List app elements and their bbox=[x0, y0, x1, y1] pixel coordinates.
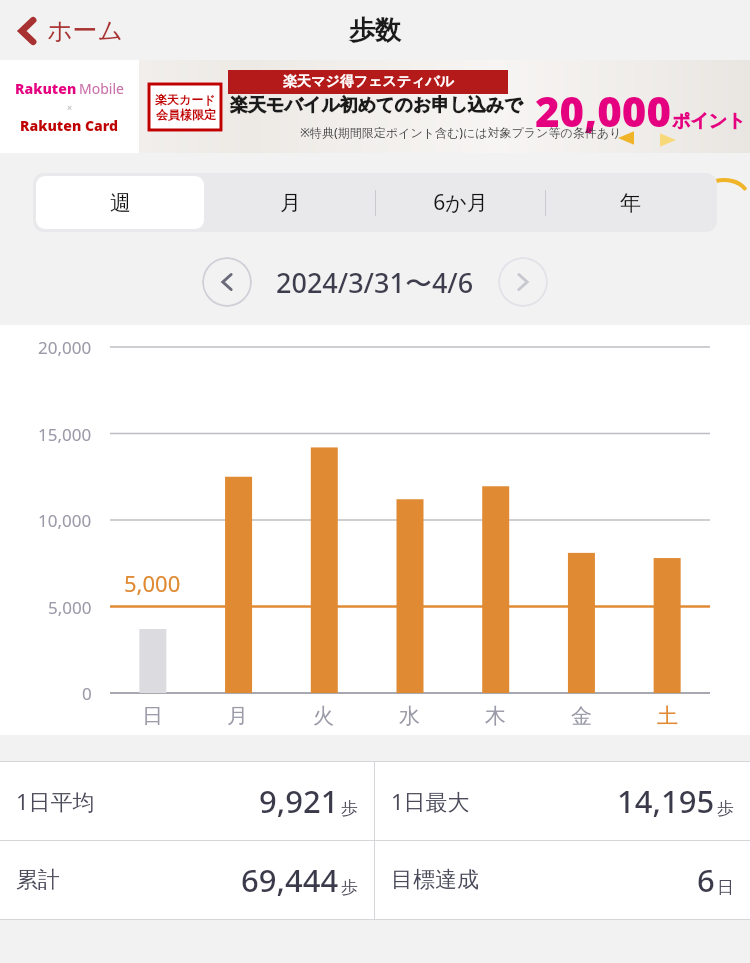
staticText: 日 bbox=[142, 703, 163, 729]
staticText: 歩 bbox=[717, 798, 734, 819]
staticText: 20,000 bbox=[38, 336, 92, 359]
staticText: 累計 bbox=[16, 866, 60, 894]
staticText: 歩 bbox=[341, 877, 358, 898]
button[interactable]: 前の週 bbox=[202, 257, 252, 307]
staticText: 6か月 bbox=[433, 188, 488, 217]
staticText: 月 bbox=[227, 703, 248, 729]
staticText: 年 bbox=[620, 190, 641, 216]
button[interactable]: 目標達成 bbox=[375, 841, 750, 919]
staticText: Rakuten bbox=[20, 116, 82, 135]
staticText: 14,195 bbox=[617, 780, 715, 822]
staticText: 6 bbox=[697, 859, 715, 901]
staticText: ホーム bbox=[47, 15, 124, 46]
staticText: 9,921 bbox=[259, 780, 339, 822]
staticText: 楽天モバイル初めてのお申し込みで bbox=[230, 94, 523, 117]
staticText: 歩数 bbox=[349, 14, 401, 47]
staticText: 会員様限定 bbox=[156, 107, 216, 122]
staticText: 5,000 bbox=[48, 596, 92, 619]
staticText: Rakuten bbox=[15, 79, 77, 98]
button[interactable]: 週 bbox=[35, 175, 205, 230]
staticText: 20,000 bbox=[535, 82, 672, 139]
staticText: 5,000 bbox=[124, 568, 181, 598]
staticText: 日 bbox=[717, 877, 734, 898]
staticText: 月 bbox=[280, 190, 301, 216]
button[interactable]: 1日最大 bbox=[375, 762, 750, 840]
staticText: 木 bbox=[485, 703, 506, 729]
button[interactable]: 累計 bbox=[0, 841, 374, 919]
staticText: 週 bbox=[110, 190, 131, 216]
button[interactable]: ホーム bbox=[10, 11, 130, 50]
staticText: 69,444 bbox=[241, 859, 339, 901]
staticText: 2024/3/31〜4/6 bbox=[276, 264, 474, 301]
staticText: ※特典(期間限定ポイント含む)には対象プラン等の条件あり bbox=[300, 124, 622, 140]
staticText: 歩 bbox=[341, 798, 358, 819]
button[interactable]: 月 bbox=[205, 175, 375, 230]
staticText: 1日最大 bbox=[391, 786, 470, 816]
staticText: 15,000 bbox=[38, 423, 92, 446]
button[interactable]: 次の週 bbox=[498, 257, 548, 307]
staticText: 楽天マジ得フェスティバル bbox=[283, 73, 454, 91]
staticText: 水 bbox=[399, 703, 420, 729]
button[interactable]: 年 bbox=[545, 175, 715, 230]
staticText: 1日平均 bbox=[16, 786, 95, 816]
staticText: 火 bbox=[313, 703, 334, 729]
staticText: 金 bbox=[571, 703, 592, 729]
staticText: × bbox=[67, 101, 73, 113]
button[interactable]: 1日平均 bbox=[0, 762, 374, 840]
staticText: Card bbox=[85, 116, 119, 135]
button[interactable]: 6か月 bbox=[375, 175, 545, 230]
staticText: ポイント bbox=[672, 110, 746, 133]
staticText: 0 bbox=[82, 682, 92, 705]
staticText: 楽天カード bbox=[155, 92, 216, 107]
staticText: 目標達成 bbox=[391, 866, 479, 894]
button[interactable]: 楽天モバイル広告 bbox=[0, 60, 750, 153]
staticText: 土 bbox=[657, 703, 678, 729]
staticText: Mobile bbox=[79, 79, 124, 98]
staticText: 10,000 bbox=[38, 509, 92, 532]
